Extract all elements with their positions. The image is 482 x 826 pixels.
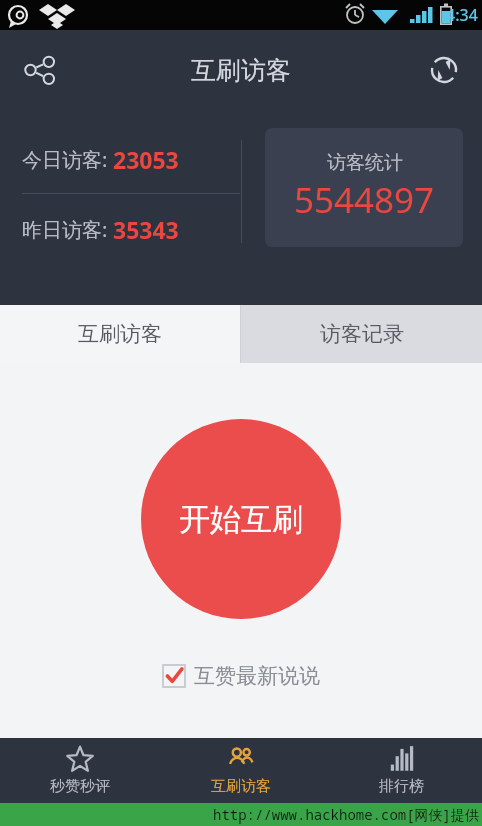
staticText: 5544897 xyxy=(294,176,435,224)
button[interactable]: 访客统计 xyxy=(265,128,463,247)
staticText: 秒赞秒评 xyxy=(50,777,110,796)
button[interactable]: 秒赞秒评 xyxy=(0,738,160,803)
staticText: 4:34 xyxy=(446,4,478,26)
button[interactable]: 互赞最新说说 xyxy=(157,659,326,693)
staticText: http://www.hackhome.com[网侠]提供 xyxy=(213,805,479,824)
staticText: 今日访客: xyxy=(22,146,113,173)
staticText: 35343 xyxy=(113,214,179,245)
button[interactable]: 排行榜 xyxy=(321,738,482,803)
staticText: 互刷访客 xyxy=(191,55,291,86)
staticText: 开始互刷 xyxy=(179,500,303,539)
staticText: 互赞最新说说 xyxy=(194,663,320,689)
button[interactable]: 开始互刷 xyxy=(141,419,341,619)
button[interactable]: Share xyxy=(12,42,68,98)
staticText: 排行榜 xyxy=(379,777,424,796)
staticText: 互刷访客 xyxy=(78,321,162,347)
button[interactable]: 访客记录 xyxy=(241,305,482,363)
button[interactable]: Refresh xyxy=(416,42,472,98)
staticText: 23053 xyxy=(113,144,179,175)
staticText: 互刷访客 xyxy=(211,777,271,796)
button[interactable]: 互刷访客 xyxy=(160,738,321,803)
staticText: 昨日访客: xyxy=(22,216,113,243)
button[interactable]: 互刷访客 xyxy=(0,305,240,363)
staticText: 访客记录 xyxy=(320,321,404,347)
staticText: 访客统计 xyxy=(327,151,403,175)
